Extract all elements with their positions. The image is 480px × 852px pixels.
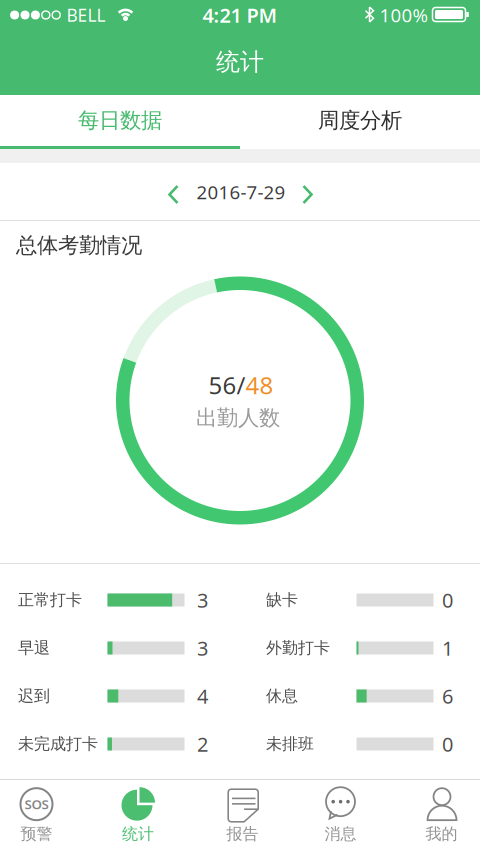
staticText: 2 xyxy=(197,731,208,757)
staticText: BELL xyxy=(66,3,105,26)
button[interactable]: 周度分析 xyxy=(240,95,480,146)
staticText: 4:21 PM xyxy=(202,2,277,28)
staticText: 100% xyxy=(379,3,428,27)
staticText: 3 xyxy=(197,587,208,613)
staticText: SOS xyxy=(24,795,48,813)
staticText: 消息 xyxy=(324,824,356,844)
button[interactable]: Next day xyxy=(297,183,317,205)
staticText: 未排班 xyxy=(266,734,314,754)
button[interactable]: SOS xyxy=(0,783,81,847)
staticText: 4 xyxy=(197,683,208,709)
staticText: 未完成打卡 xyxy=(18,734,98,754)
button[interactable]: 报告 xyxy=(197,783,287,847)
staticText: 48 xyxy=(245,369,273,401)
staticText: 0 xyxy=(442,587,453,613)
staticText: 外勤打卡 xyxy=(266,638,330,658)
staticText: 0 xyxy=(442,731,453,757)
staticText: 2016-7-29 xyxy=(196,180,285,204)
staticText: 迟到 xyxy=(18,686,50,706)
staticText: 预警 xyxy=(20,824,52,844)
button[interactable]: 我的 xyxy=(396,783,480,847)
staticText: 每日数据 xyxy=(78,107,162,134)
staticText: 出勤人数 xyxy=(196,405,280,431)
staticText: 统计 xyxy=(216,47,264,77)
button[interactable]: 统计 xyxy=(93,783,183,847)
staticText: 统计 xyxy=(122,824,154,844)
button[interactable]: 消息 xyxy=(295,783,385,847)
staticText: 休息 xyxy=(266,686,298,706)
button[interactable]: Previous day xyxy=(163,183,183,205)
staticText: 缺卡 xyxy=(266,590,298,610)
staticText: 报告 xyxy=(226,824,258,844)
staticText: 56/ xyxy=(208,369,245,401)
staticText: 早退 xyxy=(18,638,50,658)
staticText: 3 xyxy=(197,635,208,661)
staticText: 我的 xyxy=(425,824,457,844)
staticText: 正常打卡 xyxy=(18,590,82,610)
staticText: 周度分析 xyxy=(318,107,402,134)
button[interactable]: 每日数据 xyxy=(0,95,240,146)
staticText: 6 xyxy=(442,683,453,709)
staticText: 总体考勤情况 xyxy=(16,232,142,259)
staticText: 1 xyxy=(442,635,453,661)
